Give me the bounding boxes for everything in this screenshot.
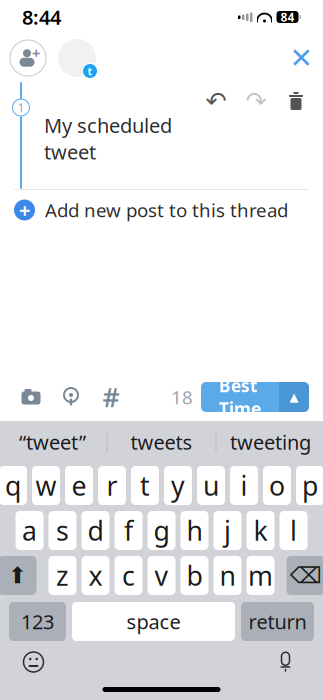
button[interactable]: u [197,466,225,505]
button[interactable]: Add location [54,380,88,414]
staticText: n [219,558,235,593]
staticText: d [87,513,103,548]
staticText: ✕ [289,42,312,74]
button[interactable]: p [296,466,323,505]
button[interactable]: Backspace [286,556,323,595]
button[interactable]: g [147,511,175,550]
button[interactable]: Scheduling options [279,382,309,412]
button[interactable]: Undo [203,86,229,116]
staticText: r [106,468,117,503]
button[interactable]: space [72,602,235,641]
button[interactable]: i [230,466,258,505]
staticText: i [240,468,247,503]
staticText: a [22,513,37,548]
staticText: g [153,513,169,548]
button[interactable]: v [147,556,175,595]
staticText: # [102,379,119,415]
button[interactable]: z [48,556,76,595]
staticText: Best Time [219,374,261,420]
staticText: b [186,558,202,593]
staticText: l [290,513,297,548]
button[interactable]: w [32,466,60,505]
staticText: Add new post to this thread [45,198,288,222]
button[interactable]: Emoji [16,647,50,677]
staticText: t [87,64,92,78]
staticText: + [19,197,30,223]
staticText: tweeting [230,429,311,455]
staticText: v [154,558,168,593]
button[interactable]: “tweet” [0,421,106,463]
staticText: f [124,513,133,548]
staticText: + [32,43,40,63]
staticText: o [269,468,285,503]
staticText: h [186,513,202,548]
button[interactable]: 123 [9,602,66,641]
button[interactable]: l [279,511,307,550]
button[interactable]: f [114,511,142,550]
staticText: ▲ [289,390,298,404]
staticText: 1 [17,99,24,115]
button[interactable]: y [164,466,192,505]
staticText: 123 [21,608,54,635]
staticText: c [122,558,135,593]
button[interactable]: k [246,511,274,550]
button[interactable]: Shift [0,556,36,595]
button[interactable]: Delete [283,86,309,116]
staticText: j [224,513,231,548]
staticText: z [56,558,69,593]
staticText: 18 [171,385,193,409]
staticText: x [88,558,102,593]
button[interactable]: tweeting [216,421,323,463]
staticText: m [248,558,273,593]
button[interactable]: e [65,466,93,505]
staticText: return [248,608,306,635]
staticText: y [171,468,185,503]
staticText: ⌫ [289,563,321,588]
button[interactable]: Best Time [201,382,279,412]
button[interactable]: return [241,602,314,641]
button[interactable]: Dictation [268,647,302,677]
button[interactable]: n [213,556,241,595]
staticText: 8:44 [22,4,61,30]
staticText: q [5,468,21,503]
staticText: w [35,468,56,503]
button[interactable]: h [180,511,208,550]
button[interactable]: m [246,556,274,595]
staticText: My scheduled tweet [44,112,172,165]
button[interactable]: tweets [107,421,215,463]
staticText: ↷ [245,87,266,115]
button[interactable]: c [114,556,142,595]
staticText: s [56,513,69,548]
staticText: space [126,608,180,635]
staticText: u [203,468,219,503]
button[interactable]: q [0,466,27,505]
staticText: t [140,468,150,503]
button[interactable]: d [81,511,109,550]
button[interactable]: s [48,511,76,550]
staticText: ⬆ [8,563,27,588]
staticText: “tweet” [19,429,86,455]
button[interactable]: r [98,466,126,505]
button[interactable]: Add photo [14,380,48,414]
staticText: tweets [130,429,192,455]
button[interactable]: Add hashtag [94,380,128,414]
button[interactable]: Redo [243,86,269,116]
button[interactable]: a [15,511,43,550]
button[interactable]: b [180,556,208,595]
staticText: e [71,468,86,503]
button[interactable]: o [263,466,291,505]
staticText: p [302,468,318,503]
staticText: k [253,513,267,548]
button[interactable]: x [81,556,109,595]
button[interactable]: t [131,466,159,505]
button[interactable]: j [213,511,241,550]
staticText: 84 [280,9,294,25]
staticText: ↶ [205,87,226,115]
button[interactable]: + [0,190,323,230]
button[interactable]: Close [279,36,323,80]
